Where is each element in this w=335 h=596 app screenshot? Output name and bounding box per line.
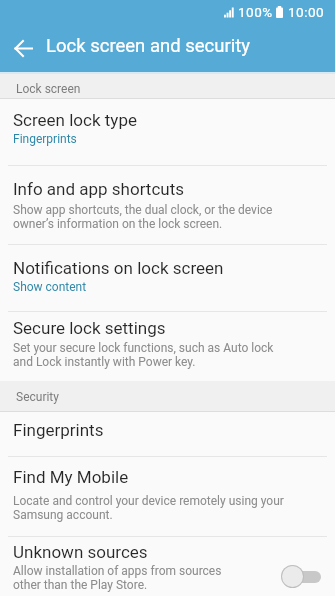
staticText: Info and app shortcuts (13, 179, 185, 199)
button[interactable] (0, 25, 46, 72)
button[interactable]: Unknown sources (0, 537, 335, 596)
staticText: Security (16, 390, 59, 404)
staticText: Notifications on lock screen (13, 258, 224, 278)
staticText: Unknown sources (13, 542, 148, 562)
staticText: Screen lock type (13, 110, 137, 130)
staticText: Fingerprints (13, 420, 104, 440)
button[interactable]: Notifications on lock screen (0, 245, 335, 311)
staticText: Lock screen and security (46, 35, 251, 57)
staticText: Set your secure lock functions, such as … (13, 341, 274, 369)
staticText: Lock screen (16, 82, 81, 96)
staticText: Show app shortcuts, the dual clock, or t… (13, 203, 273, 231)
button[interactable]: Secure lock settings (0, 312, 335, 381)
button[interactable]: Find My Mobile (0, 457, 335, 536)
button[interactable] (281, 565, 321, 588)
staticText: 10:00 (288, 4, 325, 20)
staticText: Show content (13, 280, 87, 294)
staticText: 100% (238, 4, 273, 20)
staticText: Find My Mobile (13, 467, 129, 487)
button[interactable]: Screen lock type (0, 99, 335, 165)
staticText: Allow installation of apps from sources … (13, 564, 222, 592)
button[interactable]: Fingerprints (0, 412, 335, 456)
staticText: Fingerprints (13, 132, 77, 146)
button[interactable]: Info and app shortcuts (0, 166, 335, 244)
staticText: Locate and control your device remotely … (13, 494, 284, 522)
staticText: Secure lock settings (13, 318, 166, 338)
